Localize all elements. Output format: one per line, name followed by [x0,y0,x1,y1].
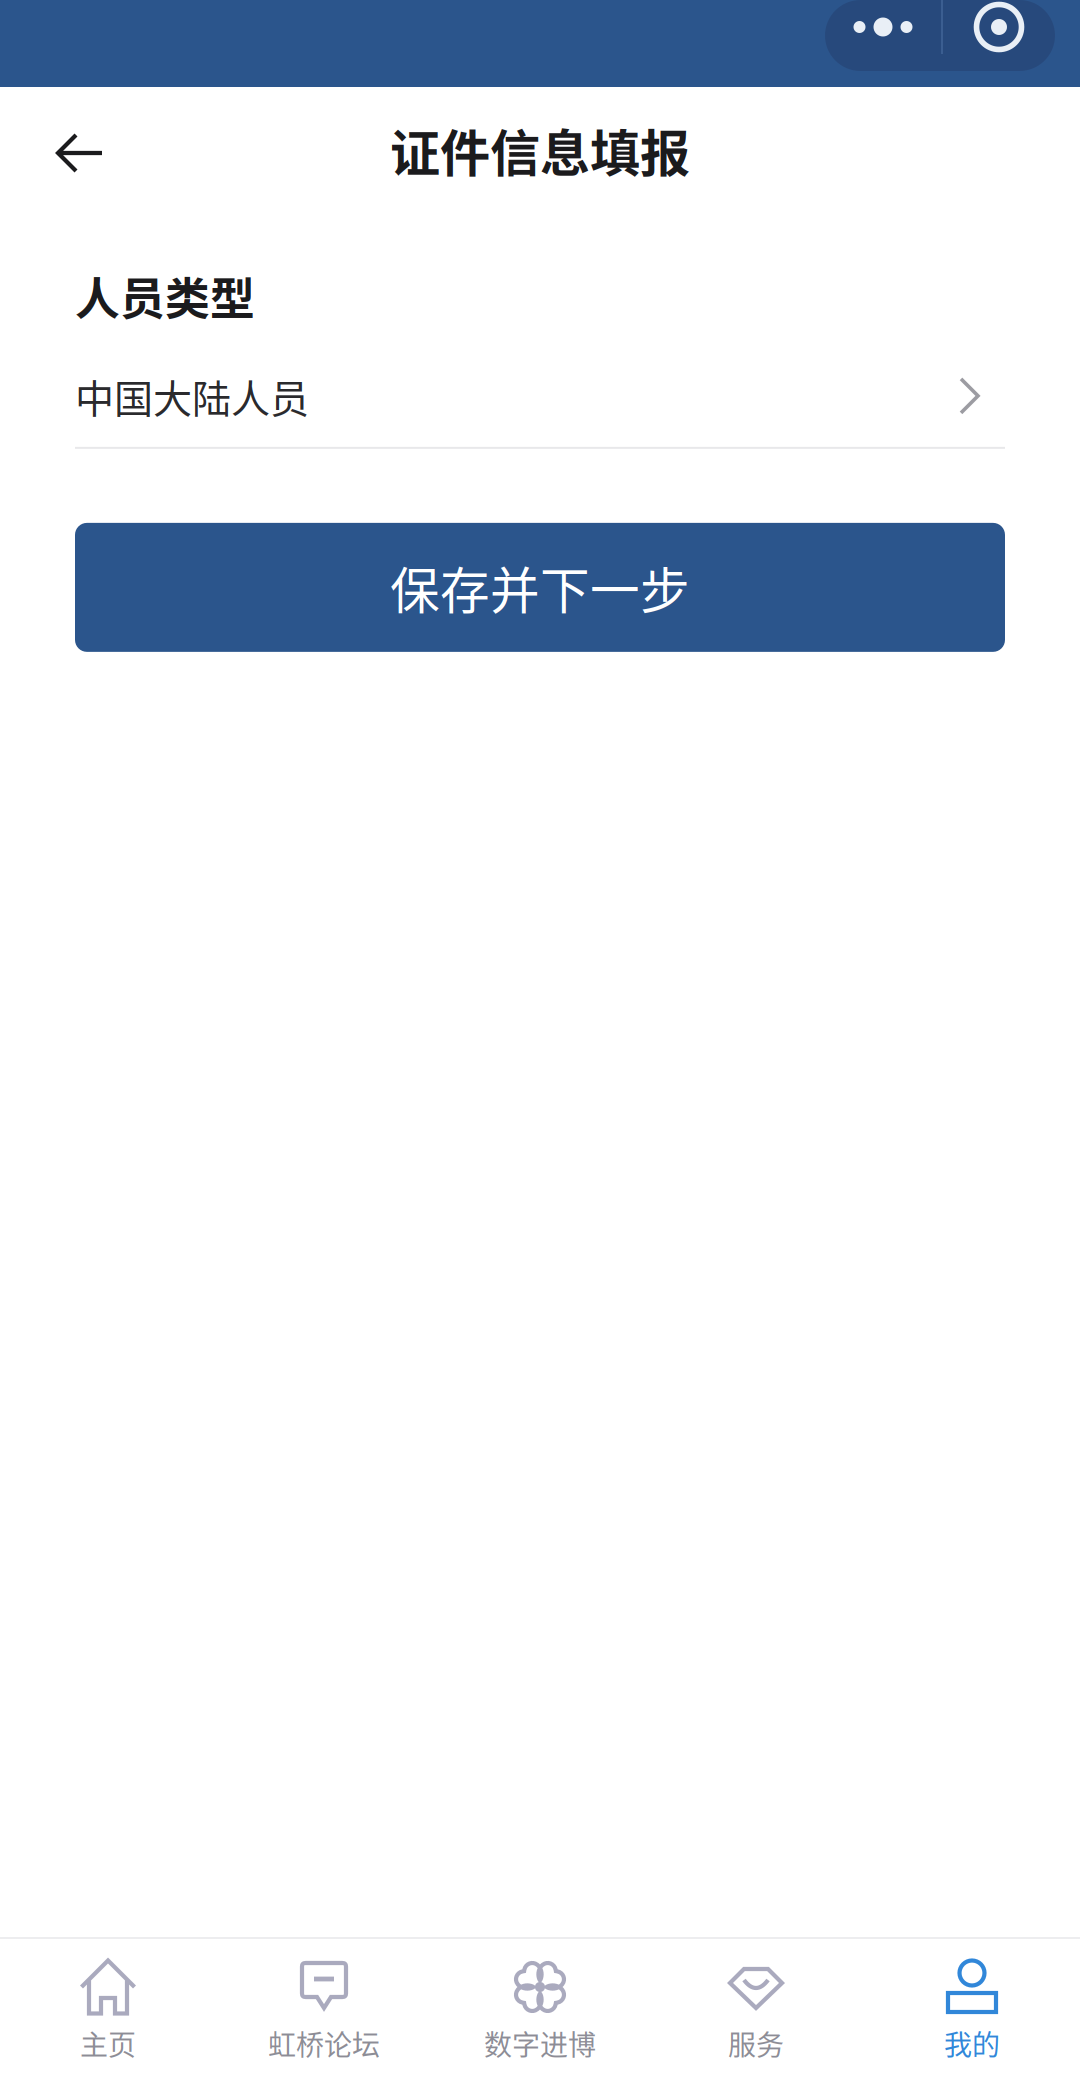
staticText: 保存并下一步 [390,551,690,623]
staticText: 数字进博 [484,2023,596,2063]
staticText: 人员类型 [75,263,255,328]
button[interactable]: 虹桥论坛 [216,1958,432,2097]
button[interactable]: 我的 [864,1958,1080,2097]
button[interactable]: 主页 [0,1958,216,2097]
staticText: 主页 [80,2023,136,2063]
button[interactable]: 数字进博 [432,1958,648,2097]
button[interactable]: 保存并下一步 [75,523,1005,652]
button[interactable]: 中国大陆人员 [75,350,1005,442]
button[interactable]: 服务 [648,1958,864,2097]
staticText: 虹桥论坛 [268,2023,380,2063]
staticText: 中国大陆人员 [75,368,309,424]
staticText: 服务 [728,2023,784,2063]
staticText: 我的 [944,2023,1000,2063]
staticText: 证件信息填报 [390,114,690,186]
button[interactable]: Back [0,87,160,213]
